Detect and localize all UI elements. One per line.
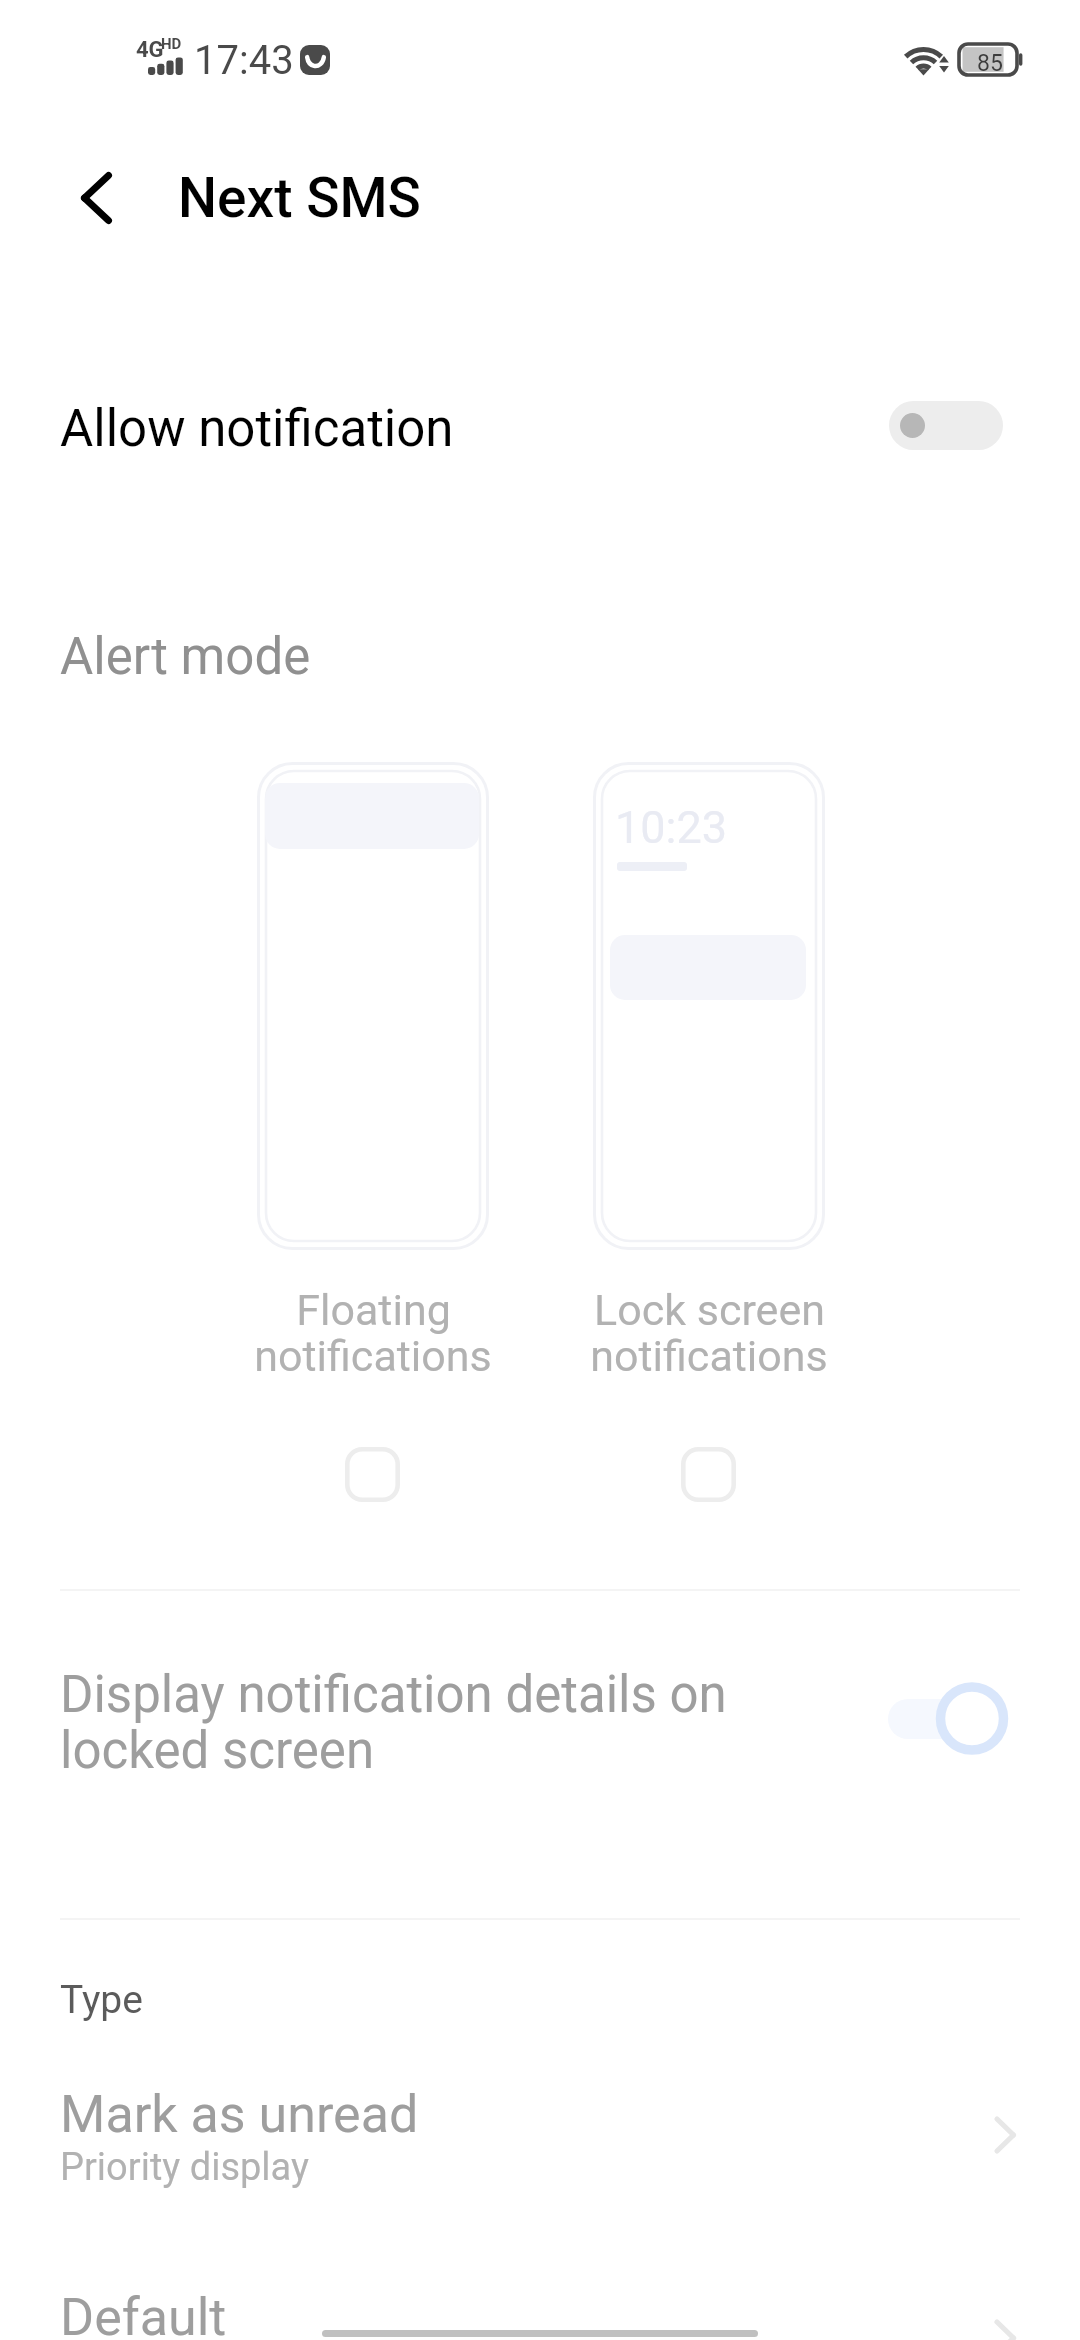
- button[interactable]: Allow notification toggle: [889, 401, 1003, 450]
- button[interactable]: Allow notification: [0, 362, 1080, 492]
- staticText: Floating: [296, 1285, 451, 1335]
- button[interactable]: Floating notifications checkbox: [345, 1447, 400, 1502]
- staticText: notifications: [254, 1331, 492, 1381]
- staticText: 17:43: [194, 37, 294, 84]
- staticText: Default: [60, 2287, 227, 2340]
- staticText: Type: [60, 1977, 143, 2023]
- staticText: Lock screen: [594, 1285, 825, 1335]
- button[interactable]: Mark as unread: [0, 2055, 1080, 2205]
- button[interactable]: Display notification details on locked s…: [0, 1590, 1080, 1918]
- button[interactable]: Default: [0, 2258, 1080, 2340]
- staticText: Next SMS: [178, 166, 421, 230]
- button[interactable]: Display notification details toggle: [888, 1682, 1012, 1758]
- staticText: Priority display: [60, 2145, 309, 2190]
- staticText: 10:23: [615, 801, 728, 854]
- staticText: Alert mode: [60, 627, 311, 687]
- button[interactable]: Floating notifications preview: [257, 762, 489, 1250]
- button[interactable]: Back: [58, 160, 134, 236]
- staticText: Mark as unread: [60, 2084, 419, 2145]
- staticText: 4G: [136, 37, 164, 63]
- button[interactable]: Lock screen notifications preview: [593, 762, 825, 1250]
- staticText: HD: [161, 35, 182, 53]
- button[interactable]: Lock screen notifications checkbox: [681, 1447, 736, 1502]
- staticText: Allow notification: [60, 399, 454, 459]
- staticText: Display notification details on locked s…: [60, 1665, 727, 1780]
- staticText: 85: [977, 50, 1003, 77]
- staticText: notifications: [590, 1331, 828, 1381]
